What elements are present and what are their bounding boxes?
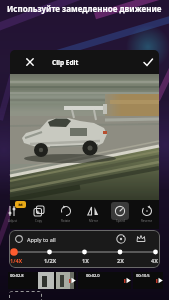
staticText: Apply to all [27,236,56,243]
button[interactable]: 1/2X [38,257,62,264]
button[interactable]: 00:10.5 [133,272,163,289]
staticText: Adjust [8,219,17,223]
button[interactable]: Copy [26,200,52,229]
button[interactable]: Mirror [80,200,106,229]
staticText: 00:02.8 [10,273,24,278]
button[interactable]: 00:02.0 [78,272,131,289]
staticText: 2X [117,257,124,264]
button[interactable]: 1X [73,257,97,264]
staticText: 4X [151,257,158,264]
staticText: Mirror [89,219,98,223]
button[interactable]: Rotate [53,200,79,229]
button[interactable]: Apply to all [15,233,56,245]
button[interactable]: Adjust [0,200,25,229]
button[interactable]: 4X [142,257,160,264]
staticText: 00:02.0 [86,273,100,278]
button[interactable]: Используйте замедленное движение [0,3,169,14]
button[interactable]: Reverse [134,200,160,229]
staticText: Reverse [141,219,153,223]
button[interactable] [23,55,37,69]
button[interactable] [9,291,42,300]
button[interactable]: 1/4X [9,257,28,264]
button[interactable]: Speed [107,200,133,229]
staticText: 1X [82,257,89,264]
button[interactable] [115,233,127,245]
staticText: Copy [35,219,43,223]
staticText: Clip Edit [52,58,79,67]
staticText: Rotate [61,219,71,223]
button[interactable] [135,233,147,245]
button[interactable]: 00:02.8 [8,272,76,289]
button[interactable]: 2X [108,257,132,264]
staticText: 1/4X [10,257,23,264]
staticText: Speed [116,219,125,223]
staticText: Используйте замедленное движение [7,3,162,14]
button[interactable] [141,55,155,69]
staticText: 1/2X [44,257,57,264]
button[interactable] [9,246,160,258]
staticText: 00:10.5 [136,273,150,278]
